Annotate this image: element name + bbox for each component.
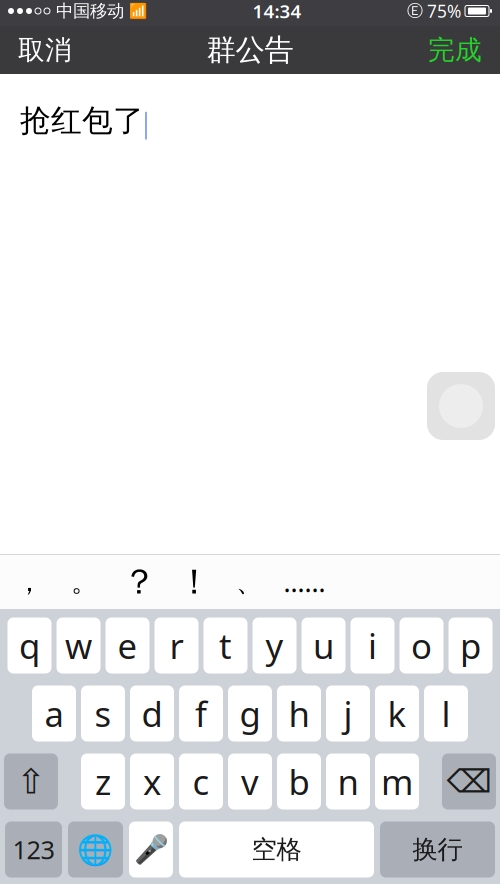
- button[interactable]: 、: [222, 555, 277, 609]
- button[interactable]: s: [81, 685, 125, 741]
- staticText: 🌐: [77, 833, 114, 866]
- staticText: r: [169, 622, 183, 668]
- staticText: 空格: [251, 834, 301, 865]
- staticText: ！: [177, 561, 212, 603]
- button[interactable]: d: [130, 685, 174, 741]
- staticText: k: [387, 690, 406, 736]
- button[interactable]: 。: [57, 555, 112, 609]
- staticText: 取消: [18, 34, 72, 66]
- staticText: 📶: [129, 3, 147, 19]
- button[interactable]: m: [375, 753, 419, 809]
- button[interactable]: j: [326, 685, 370, 741]
- button[interactable]: w: [56, 617, 100, 673]
- staticText: a: [44, 690, 63, 736]
- button[interactable]: k: [375, 685, 419, 741]
- button[interactable]: ……: [277, 555, 332, 609]
- staticText: 中国移动: [56, 0, 124, 22]
- button[interactable]: v: [228, 753, 272, 809]
- staticText: p: [460, 622, 481, 668]
- button[interactable]: 换行: [380, 821, 495, 877]
- staticText: Ⓔ: [407, 1, 423, 21]
- button[interactable]: p: [448, 617, 492, 673]
- button[interactable]: r: [154, 617, 198, 673]
- button[interactable]: h: [277, 685, 321, 741]
- button[interactable]: c: [179, 753, 223, 809]
- button[interactable]: t: [203, 617, 247, 673]
- button[interactable]: AssistiveTouch: [427, 372, 495, 440]
- staticText: 抢红包了: [20, 102, 144, 140]
- staticText: t: [219, 622, 232, 668]
- staticText: g: [239, 690, 260, 736]
- staticText: j: [343, 690, 352, 736]
- staticText: ？: [122, 561, 157, 603]
- button[interactable]: a: [32, 685, 76, 741]
- staticText: 群公告: [206, 32, 293, 68]
- staticText: 。: [71, 566, 98, 598]
- staticText: ⇧: [16, 762, 45, 801]
- button[interactable]: u: [301, 617, 345, 673]
- button[interactable]: f: [179, 685, 223, 741]
- staticText: d: [141, 690, 162, 736]
- staticText: b: [288, 758, 309, 804]
- staticText: y: [265, 622, 283, 668]
- button[interactable]: ？: [112, 555, 167, 609]
- button[interactable]: g: [228, 685, 272, 741]
- button[interactable]: n: [326, 753, 370, 809]
- button[interactable]: 完成: [410, 26, 500, 74]
- button[interactable]: b: [277, 753, 321, 809]
- staticText: q: [19, 622, 40, 668]
- staticText: x: [143, 758, 161, 804]
- staticText: ，: [16, 566, 43, 598]
- button[interactable]: 空格: [179, 821, 374, 877]
- button[interactable]: ，: [2, 555, 57, 609]
- button[interactable]: y: [252, 617, 296, 673]
- staticText: f: [195, 690, 207, 736]
- staticText: c: [192, 758, 209, 804]
- button[interactable]: 123: [5, 821, 62, 877]
- staticText: s: [94, 690, 111, 736]
- staticText: 123: [12, 833, 54, 866]
- staticText: o: [411, 622, 432, 668]
- staticText: 75%: [427, 0, 461, 22]
- button[interactable]: Delete: [442, 753, 496, 809]
- staticText: w: [65, 622, 92, 668]
- staticText: u: [313, 622, 334, 668]
- button[interactable]: 取消: [0, 26, 90, 74]
- staticText: n: [337, 758, 358, 804]
- staticText: 换行: [412, 834, 462, 865]
- button[interactable]: ！: [167, 555, 222, 609]
- staticText: 、: [236, 566, 263, 598]
- button[interactable]: Dictation: [129, 821, 173, 877]
- staticText: l: [441, 690, 450, 736]
- staticText: ……: [283, 564, 325, 600]
- staticText: h: [288, 690, 309, 736]
- staticText: v: [241, 758, 259, 804]
- button[interactable]: Shift: [4, 753, 58, 809]
- staticText: ⌫: [446, 763, 491, 800]
- button[interactable]: l: [424, 685, 468, 741]
- staticText: z: [95, 758, 111, 804]
- staticText: m: [381, 758, 413, 804]
- button[interactable]: x: [130, 753, 174, 809]
- button[interactable]: o: [399, 617, 443, 673]
- staticText: 14:34: [252, 0, 301, 23]
- staticText: i: [368, 622, 377, 668]
- staticText: 🎤: [133, 833, 168, 865]
- button[interactable]: q: [7, 617, 51, 673]
- button[interactable]: e: [105, 617, 149, 673]
- button[interactable]: z: [81, 753, 125, 809]
- button[interactable]: Next keyboard: [68, 821, 123, 877]
- button[interactable]: i: [350, 617, 394, 673]
- staticText: 完成: [428, 34, 482, 66]
- staticText: e: [117, 622, 137, 668]
